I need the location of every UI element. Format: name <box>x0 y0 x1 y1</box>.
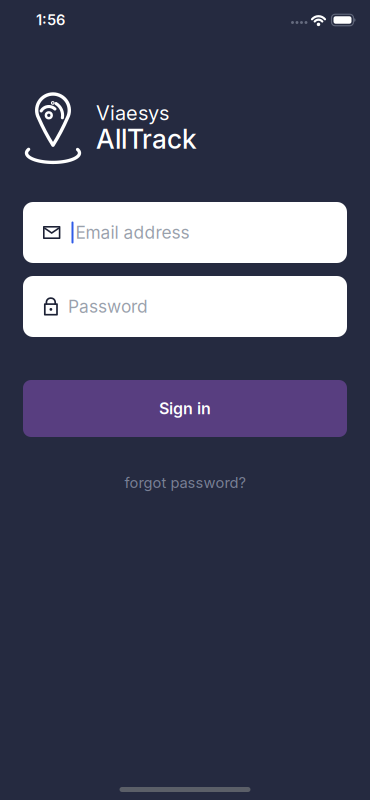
button[interactable]: Password <box>23 276 347 337</box>
staticText: Email address <box>75 222 189 243</box>
button[interactable]: forgot password? <box>124 474 245 491</box>
staticText: Password <box>68 296 148 317</box>
staticText: AllTrack <box>96 123 197 155</box>
button[interactable]: Email address <box>23 202 347 263</box>
staticText: 1:56 <box>36 11 65 29</box>
staticText: Sign in <box>159 399 211 418</box>
staticText: Viaesys <box>96 101 169 125</box>
button[interactable]: Sign in <box>23 380 347 437</box>
staticText: forgot password? <box>124 474 245 491</box>
